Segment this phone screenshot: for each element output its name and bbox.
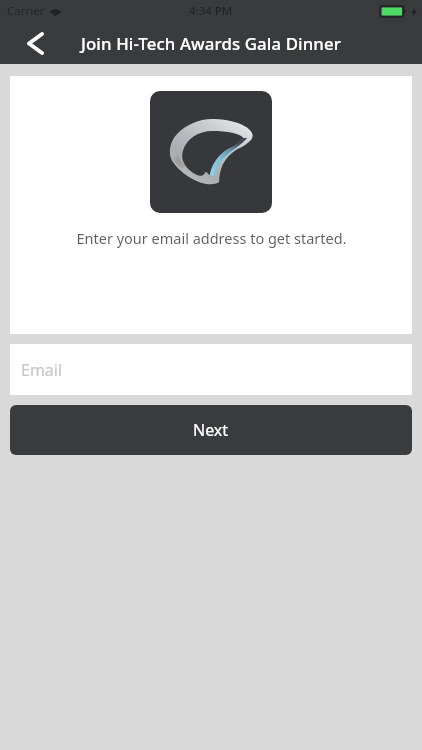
staticText: Join Hi-Tech Awards Gala Dinner [81,32,341,55]
staticText: Email [21,359,63,381]
button[interactable]: Next [10,405,412,455]
staticText: Next [193,419,229,441]
button[interactable]: Back [0,22,70,64]
staticText: Carrier [7,3,45,19]
staticText: Enter your email address to get started. [76,228,347,248]
button[interactable]: Email [10,344,412,395]
staticText: 4:34 PM [189,3,233,19]
